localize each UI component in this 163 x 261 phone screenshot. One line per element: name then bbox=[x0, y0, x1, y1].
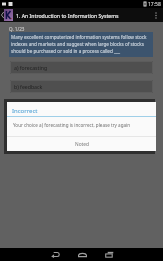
button[interactable]: Recent apps bbox=[96, 248, 122, 261]
button[interactable]: Noted bbox=[7, 137, 156, 151]
staticText: 17:58 bbox=[148, 1, 161, 8]
button[interactable]: Home bbox=[69, 248, 95, 261]
staticText: Many excellent computerized information … bbox=[11, 34, 151, 54]
button[interactable]: Back bbox=[42, 248, 68, 261]
button[interactable]: a) forecasting bbox=[10, 61, 153, 74]
staticText: b) feedback bbox=[14, 83, 43, 90]
staticText: a) forecasting bbox=[14, 64, 48, 71]
staticText: Q. 1/23 bbox=[9, 26, 25, 32]
staticText: 1. An Introduction to Information System… bbox=[16, 12, 119, 19]
staticText: Incorrect bbox=[12, 107, 38, 115]
staticText: Noted bbox=[75, 141, 89, 148]
button[interactable]: Navigate up bbox=[0, 8, 4, 22]
button[interactable]: More options bbox=[149, 8, 163, 22]
button[interactable]: b) feedback bbox=[10, 80, 153, 93]
staticText: Your choice a) forecasting is incorrect,… bbox=[13, 122, 131, 128]
